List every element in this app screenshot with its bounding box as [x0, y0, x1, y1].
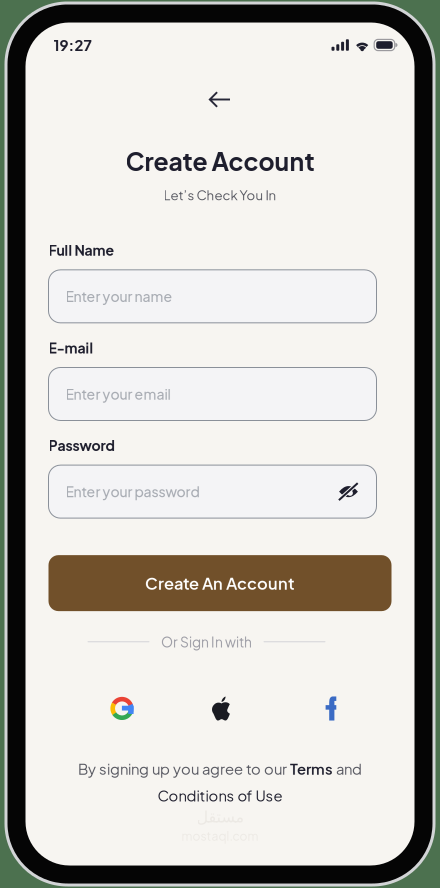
button[interactable]: Enter your email	[48, 367, 376, 420]
button[interactable]: Continue with Google	[94, 686, 150, 730]
staticText: Full Name	[48, 241, 114, 259]
staticText: Conditions of Use	[157, 786, 282, 805]
staticText: By signing up you agree to our	[78, 759, 290, 778]
staticText: Let’s Check You In	[163, 187, 276, 203]
staticText: Password	[48, 436, 114, 454]
button[interactable]: Terms	[290, 759, 333, 778]
button[interactable]: Enter your password	[48, 465, 376, 518]
staticText: Enter your name	[65, 287, 172, 305]
button[interactable]: Continue with Apple	[194, 686, 250, 730]
button[interactable]: Continue with Facebook	[303, 686, 359, 730]
staticText: E-mail	[48, 339, 93, 356]
button[interactable]: Back	[198, 79, 242, 119]
staticText: Create Account	[125, 145, 314, 177]
staticText: Enter your password	[65, 483, 199, 500]
button[interactable]: Conditions of Use	[157, 786, 282, 805]
staticText: Create An Account	[145, 573, 295, 593]
button[interactable]: Create An Account	[48, 555, 391, 611]
button[interactable]: Enter your name	[48, 270, 376, 323]
staticText: mostaql.com	[181, 828, 258, 843]
staticText: Enter your email	[65, 385, 170, 403]
staticText: Or Sign In with	[161, 633, 252, 650]
staticText: مستقل	[196, 808, 244, 826]
staticText: and	[333, 759, 362, 778]
staticText: 19:27	[53, 36, 91, 54]
staticText: Terms	[290, 759, 333, 778]
